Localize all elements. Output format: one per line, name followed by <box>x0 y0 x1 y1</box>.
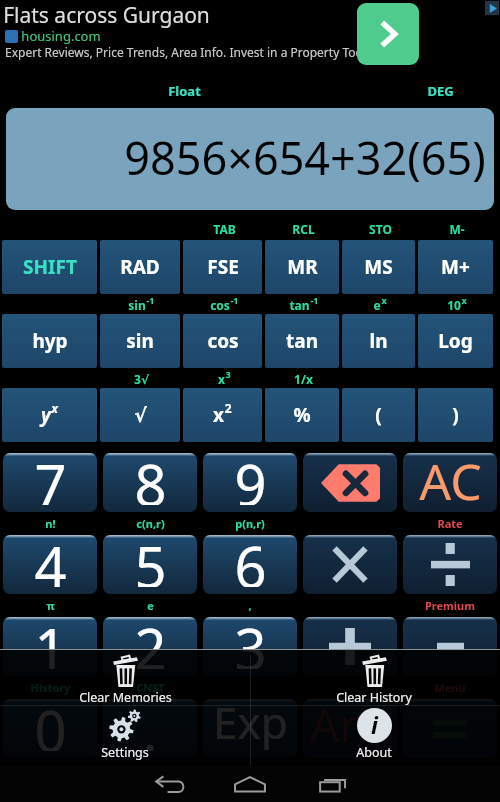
other: Divide <box>431 543 470 586</box>
other: Plus <box>329 628 371 665</box>
button[interactable] <box>203 699 297 758</box>
staticText: x <box>218 371 225 387</box>
staticText: cos <box>210 297 230 313</box>
staticText: Premium <box>425 598 475 613</box>
button[interactable] <box>303 699 397 758</box>
button[interactable] <box>403 699 497 758</box>
staticText: TAB <box>213 221 236 237</box>
staticText: RCL <box>292 221 315 237</box>
staticText: sin <box>126 328 154 354</box>
staticText: Rate <box>437 516 463 531</box>
button[interactable] <box>403 453 497 512</box>
staticText: 9856×654+32(65) <box>124 127 486 188</box>
staticText: 7 <box>34 446 67 505</box>
button[interactable]: Recent apps <box>312 769 354 799</box>
button[interactable]: sin <box>100 314 180 368</box>
button[interactable]: Clear Memories <box>63 652 187 706</box>
staticText: e <box>373 297 381 313</box>
button[interactable]: 9856×654+32(65) <box>6 108 494 210</box>
staticText: ) <box>452 402 459 428</box>
button[interactable]: y <box>2 388 97 442</box>
staticText: π <box>46 598 55 613</box>
staticText: MS <box>364 254 393 280</box>
button[interactable] <box>203 617 297 676</box>
button[interactable]: Clear History <box>312 652 436 706</box>
other: Minus <box>437 628 464 665</box>
staticText: tan <box>286 328 318 354</box>
staticText: . <box>142 692 158 751</box>
button[interactable] <box>303 535 397 594</box>
staticText: 10 <box>447 297 461 313</box>
staticText: y <box>41 402 51 428</box>
button[interactable] <box>403 617 497 676</box>
staticText: 2 <box>224 400 232 417</box>
button[interactable]: Flats across Gurgaon <box>0 0 500 70</box>
button[interactable]: tan <box>265 314 339 368</box>
staticText: 2 <box>134 610 167 669</box>
staticText: About <box>356 744 392 761</box>
staticText: n! <box>45 516 56 531</box>
button[interactable]: MR <box>265 240 339 294</box>
staticText: 1/x <box>294 371 313 387</box>
button[interactable] <box>103 617 197 676</box>
staticText: x <box>381 294 387 306</box>
staticText: CNST <box>136 680 165 695</box>
button[interactable]: Ad choices <box>485 1 499 15</box>
button[interactable]: SHIFT <box>2 240 97 294</box>
button[interactable]: ln <box>342 314 415 368</box>
staticText: cos <box>207 328 239 354</box>
button[interactable]: FSE <box>183 240 262 294</box>
button[interactable]: Open advertisement <box>357 3 419 65</box>
staticText: 1 <box>34 610 67 669</box>
button[interactable] <box>3 535 97 594</box>
button[interactable]: Log <box>418 314 493 368</box>
staticText: FSE <box>207 254 239 280</box>
staticText: Log <box>438 328 473 354</box>
staticText: sin <box>128 297 146 313</box>
button[interactable]: cos <box>183 314 262 368</box>
button[interactable]: ( <box>342 388 415 442</box>
button[interactable] <box>3 453 97 512</box>
button[interactable]: ) <box>418 388 493 442</box>
staticText: housing.com <box>21 27 101 45</box>
button[interactable] <box>303 617 397 676</box>
button[interactable]: x <box>183 388 262 442</box>
staticText: , <box>248 598 252 613</box>
staticText: History <box>30 680 71 695</box>
staticText: Clear Memories <box>79 689 172 706</box>
button[interactable] <box>203 453 297 512</box>
button[interactable]: hyp <box>2 314 97 368</box>
staticText: Exp <box>213 692 288 751</box>
button[interactable] <box>103 535 197 594</box>
button[interactable] <box>203 535 297 594</box>
button[interactable]: Home <box>228 769 272 799</box>
button[interactable] <box>303 453 397 512</box>
button[interactable]: M+ <box>418 240 493 294</box>
staticText: Flats across Gurgaon <box>3 1 210 30</box>
button[interactable] <box>103 453 197 512</box>
button[interactable]: % <box>265 388 339 442</box>
staticText: e <box>147 598 154 613</box>
staticText: 9 <box>234 446 267 505</box>
button[interactable]: Settings <box>63 707 187 761</box>
button[interactable]: √ <box>100 388 180 442</box>
staticText: Float <box>168 82 201 100</box>
staticText: Clear History <box>336 689 412 706</box>
staticText: 3 <box>234 610 267 669</box>
button[interactable] <box>103 699 197 758</box>
staticText: 8 <box>134 446 167 505</box>
staticText: -1 <box>146 294 155 306</box>
button[interactable] <box>3 617 97 676</box>
button[interactable]: i <box>312 707 436 761</box>
button[interactable]: MS <box>342 240 415 294</box>
staticText: 4 <box>34 528 67 587</box>
staticText: 0 <box>34 692 67 751</box>
button[interactable] <box>403 535 497 594</box>
button[interactable]: RAD <box>100 240 180 294</box>
button[interactable]: Back <box>149 769 191 799</box>
staticText: AC <box>419 447 482 506</box>
staticText: c(n,r) <box>136 516 165 531</box>
button[interactable] <box>3 699 97 758</box>
other: Delete <box>321 463 380 503</box>
staticText: p(n,r) <box>235 516 265 531</box>
